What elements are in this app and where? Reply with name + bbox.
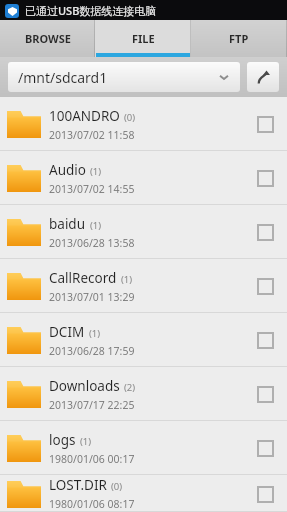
button[interactable]: Select Downloads: [247, 376, 283, 412]
staticText: (2): [124, 381, 136, 394]
staticText: BROWSE: [25, 31, 71, 46]
button[interactable]: Downloads: [0, 367, 287, 421]
staticText: (0): [124, 111, 136, 124]
staticText: Downloads: [49, 377, 120, 395]
staticText: (0): [111, 480, 123, 493]
staticText: (1): [90, 165, 102, 178]
staticText: baidu: [49, 215, 86, 233]
staticText: 2013/06/28 13:58: [49, 236, 135, 250]
button[interactable]: Select LOST.DIR: [247, 476, 283, 512]
staticText: 2013/07/02 11:58: [49, 128, 135, 142]
button[interactable]: DCIM: [0, 313, 287, 367]
staticText: CallRecord: [49, 269, 117, 287]
button[interactable]: FILE: [95, 20, 191, 57]
button[interactable]: Select 100ANDRO: [247, 106, 283, 142]
button[interactable]: Select logs: [247, 430, 283, 466]
button[interactable]: Select Audio: [247, 160, 283, 196]
staticText: (1): [89, 327, 101, 340]
button[interactable]: Select CallRecord: [247, 268, 283, 304]
button[interactable]: baidu: [0, 205, 287, 259]
button[interactable]: Select baidu: [247, 214, 283, 250]
button[interactable]: Audio: [0, 151, 287, 205]
staticText: 2013/07/01 13:29: [49, 290, 135, 304]
button[interactable]: /mnt/sdcard1: [8, 62, 240, 92]
button[interactable]: LOST.DIR: [0, 475, 287, 512]
button[interactable]: logs: [0, 421, 287, 475]
staticText: 100ANDRO: [49, 107, 120, 125]
button[interactable]: Up one level: [247, 62, 279, 92]
staticText: /mnt/sdcard1: [18, 68, 216, 87]
staticText: 2013/07/17 22:25: [49, 398, 135, 412]
button[interactable]: 100ANDRO: [0, 97, 287, 151]
staticText: FILE: [132, 31, 155, 46]
button[interactable]: BROWSE: [0, 20, 95, 57]
button[interactable]: Select DCIM: [247, 322, 283, 358]
staticText: DCIM: [49, 323, 85, 341]
staticText: 2013/07/02 14:55: [49, 182, 135, 196]
staticText: (1): [80, 435, 92, 448]
staticText: 1980/01/06 00:17: [49, 452, 135, 466]
staticText: logs: [49, 431, 76, 449]
staticText: LOST.DIR: [49, 476, 107, 494]
staticText: FTP: [229, 31, 249, 46]
button[interactable]: CallRecord: [0, 259, 287, 313]
staticText: 2013/06/28 17:59: [49, 344, 135, 358]
staticText: (1): [121, 273, 133, 286]
staticText: (1): [90, 219, 102, 232]
button[interactable]: FTP: [191, 20, 287, 57]
staticText: 已通过USB数据线连接电脑: [25, 3, 157, 18]
staticText: Audio: [49, 161, 86, 179]
staticText: 1980/01/06 08:17: [49, 497, 135, 511]
